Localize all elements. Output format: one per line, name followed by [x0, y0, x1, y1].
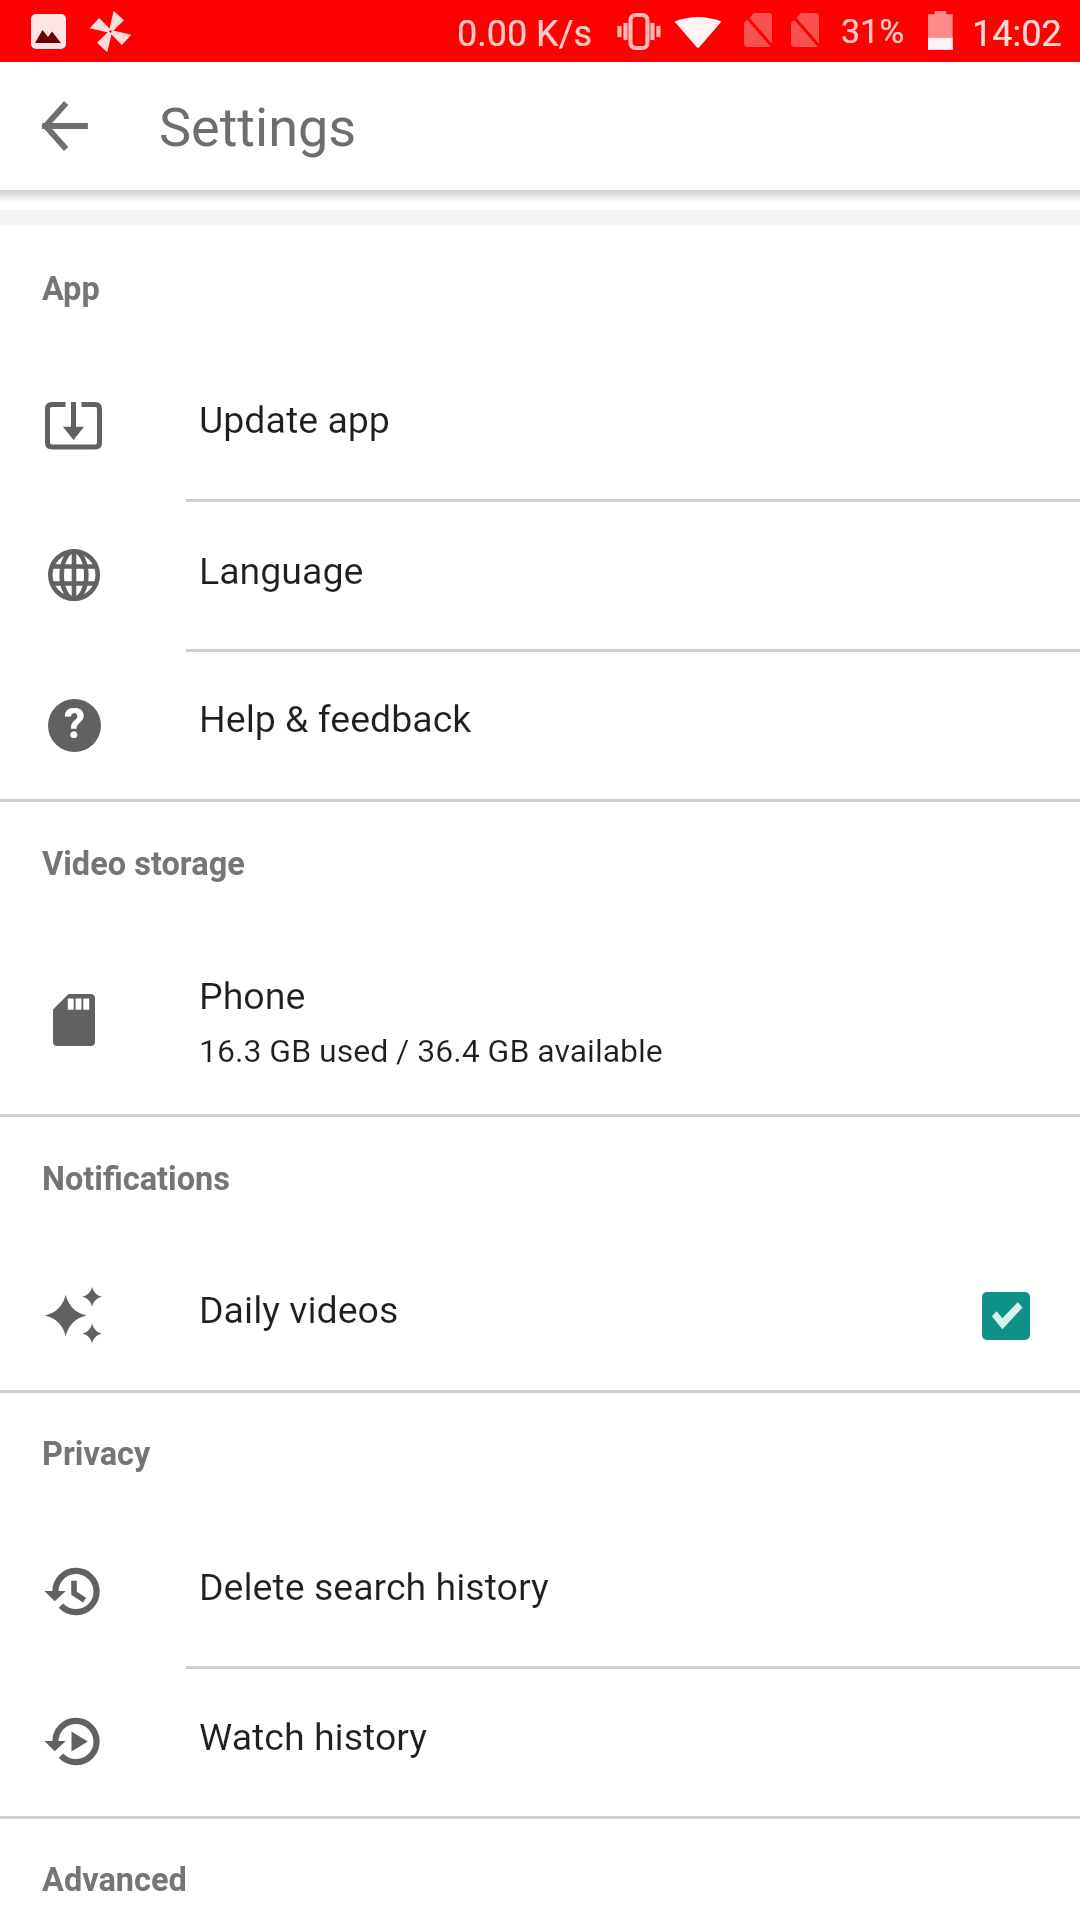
staticText: 0.00 K/s [457, 13, 593, 55]
staticText: 31% [841, 11, 905, 51]
staticText: Video storage [42, 845, 245, 883]
staticText: Delete search history [199, 1565, 549, 1609]
staticText: Daily videos [199, 1288, 399, 1332]
button[interactable]: Watch history [0, 1668, 1080, 1816]
staticText: Help & feedback [199, 697, 472, 741]
button[interactable]: Phone [0, 885, 1080, 1114]
staticText: 14:02 [972, 13, 1062, 55]
button[interactable]: Daily videos [0, 1200, 1080, 1390]
staticText: 16.3 GB used / 36.4 GB available [199, 1032, 663, 1070]
staticText: Settings [159, 96, 357, 159]
staticText: Watch history [199, 1715, 428, 1759]
staticText: Advanced [42, 1861, 187, 1899]
button[interactable]: Delete search history [0, 1476, 1080, 1666]
staticText: App [42, 270, 100, 308]
staticText: Privacy [42, 1435, 151, 1473]
button[interactable]: Navigate up [20, 82, 108, 170]
staticText: Language [199, 549, 364, 593]
button[interactable]: Daily videos notification, on [982, 1292, 1030, 1340]
button[interactable]: Update app [0, 310, 1080, 499]
staticText: Notifications [42, 1160, 231, 1198]
staticText: Phone [199, 974, 306, 1018]
staticText: ? [64, 699, 85, 748]
button[interactable]: ? [0, 651, 1080, 799]
staticText: Update app [199, 398, 390, 442]
button[interactable]: Language [0, 501, 1080, 649]
